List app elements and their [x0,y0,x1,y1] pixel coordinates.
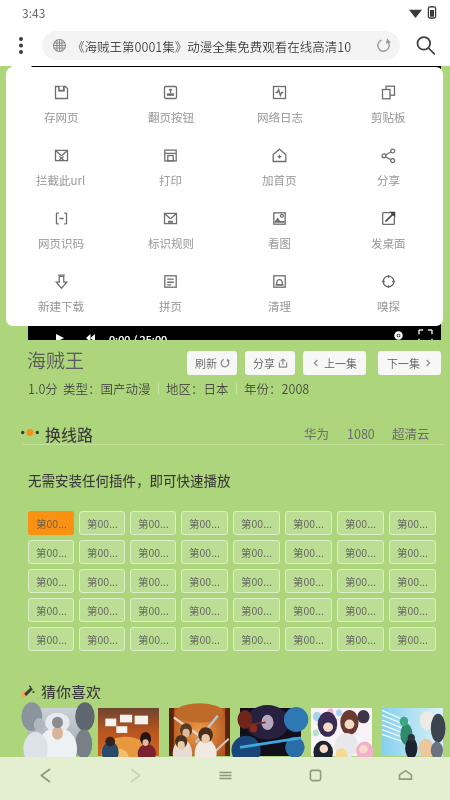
button[interactable]: Search [400,24,450,66]
staticText: 地区：日本 [166,379,229,397]
button[interactable]: Back [0,757,90,800]
button[interactable] [311,708,372,756]
button[interactable]: 加首页 [225,144,334,207]
staticText: 第00... [345,632,376,647]
button[interactable]: 第00... [130,598,176,622]
button[interactable]: 第00... [389,627,436,651]
button[interactable]: 第00... [28,598,74,622]
button[interactable]: 分享 [334,144,443,207]
staticText: 超清云 [392,424,430,442]
button[interactable]: Menu [180,757,270,800]
button[interactable]: 第00... [130,540,176,564]
button[interactable]: 第00... [28,627,74,651]
button[interactable]: 《海贼王第0001集》动漫全集免费观看在线高清10 [42,31,400,60]
button[interactable]: 拼页 [116,270,225,326]
staticText: 第00... [293,632,324,647]
button[interactable]: 第00... [285,627,332,651]
staticText: 第00... [293,516,324,531]
button[interactable] [98,708,159,756]
button[interactable]: 标识规则 [116,207,225,270]
button[interactable]: 发桌面 [334,207,443,270]
button[interactable]: 第00... [79,569,125,593]
staticText: 第00... [36,545,67,560]
staticText: 第00... [189,545,220,560]
button[interactable]: 第00... [181,511,228,535]
button[interactable]: Tabs [270,757,360,800]
button[interactable]: 刷新 [187,351,237,375]
staticText: 第00... [189,632,220,647]
button[interactable]: 嗅探 [334,270,443,326]
button[interactable]: 上一集 [303,351,366,375]
button[interactable]: 第00... [130,511,176,535]
button[interactable]: 第00... [337,511,384,535]
button[interactable] [169,708,230,756]
staticText: 清理 [268,298,291,315]
button[interactable]: 分享 [245,351,295,375]
button[interactable]: Home [360,757,450,800]
button[interactable] [27,708,88,756]
button[interactable]: Reload [368,31,398,60]
button[interactable]: 第00... [181,598,228,622]
button[interactable]: 第00... [28,540,74,564]
staticText: 第00... [345,574,376,589]
button[interactable]: 第00... [389,540,436,564]
button[interactable]: 第00... [181,569,228,593]
button[interactable]: 第00... [28,511,74,535]
button[interactable]: 第00... [181,540,228,564]
button[interactable]: 第00... [337,540,384,564]
button[interactable]: 剪贴板 [334,81,443,144]
button[interactable]: 第00... [233,511,280,535]
button[interactable] [240,708,301,756]
staticText: 第00... [241,574,272,589]
button[interactable]: 第00... [130,569,176,593]
staticText: 标识规则 [148,235,194,252]
button[interactable]: 第00... [233,540,280,564]
button[interactable]: 第00... [233,569,280,593]
button[interactable]: 打印 [116,144,225,207]
button[interactable]: 第00... [79,540,125,564]
staticText: 无需安装任何插件，即可快速播放 [28,470,231,490]
button[interactable]: 第00... [285,540,332,564]
staticText: 第00... [189,516,220,531]
staticText: 拼页 [159,298,182,315]
staticText: 第00... [36,516,67,531]
button[interactable]: 第00... [389,598,436,622]
staticText: 1080 [347,424,375,442]
button[interactable]: 第00... [233,598,280,622]
button[interactable]: 下一集 [378,351,441,375]
button[interactable]: 第00... [389,569,436,593]
button[interactable]: 第00... [285,569,332,593]
button[interactable]: More options [0,24,42,66]
button[interactable]: 拦截此url [6,144,116,207]
button[interactable]: 第00... [79,598,125,622]
button[interactable]: 第00... [337,598,384,622]
staticText: 新建下载 [38,298,84,315]
button[interactable]: 存网页 [6,81,116,144]
staticText: 第00... [138,603,169,618]
button[interactable]: 新建下载 [6,270,116,326]
staticText: 嗅探 [377,298,400,315]
button[interactable]: 第00... [285,511,332,535]
button[interactable]: 第00... [130,627,176,651]
button[interactable]: 第00... [79,627,125,651]
button[interactable]: 第00... [233,627,280,651]
staticText: 换线路 [45,422,94,443]
button[interactable]: 第00... [285,598,332,622]
button[interactable] [382,708,443,756]
button[interactable]: 清理 [225,270,334,326]
button[interactable]: 网页识码 [6,207,116,270]
button[interactable]: 网络日志 [225,81,334,144]
button[interactable]: 看图 [225,207,334,270]
button[interactable]: 第00... [28,569,74,593]
button[interactable]: 第00... [389,511,436,535]
button[interactable]: 第00... [79,511,125,535]
staticText: 发桌面 [371,235,406,252]
staticText: 第00... [87,545,118,560]
staticText: 猜你喜欢 [41,681,102,699]
button[interactable]: 第00... [337,627,384,651]
button[interactable]: 翻页按钮 [116,81,225,144]
button[interactable]: 第00... [337,569,384,593]
button[interactable]: 第00... [181,627,228,651]
staticText: 拦截此url [36,172,86,189]
